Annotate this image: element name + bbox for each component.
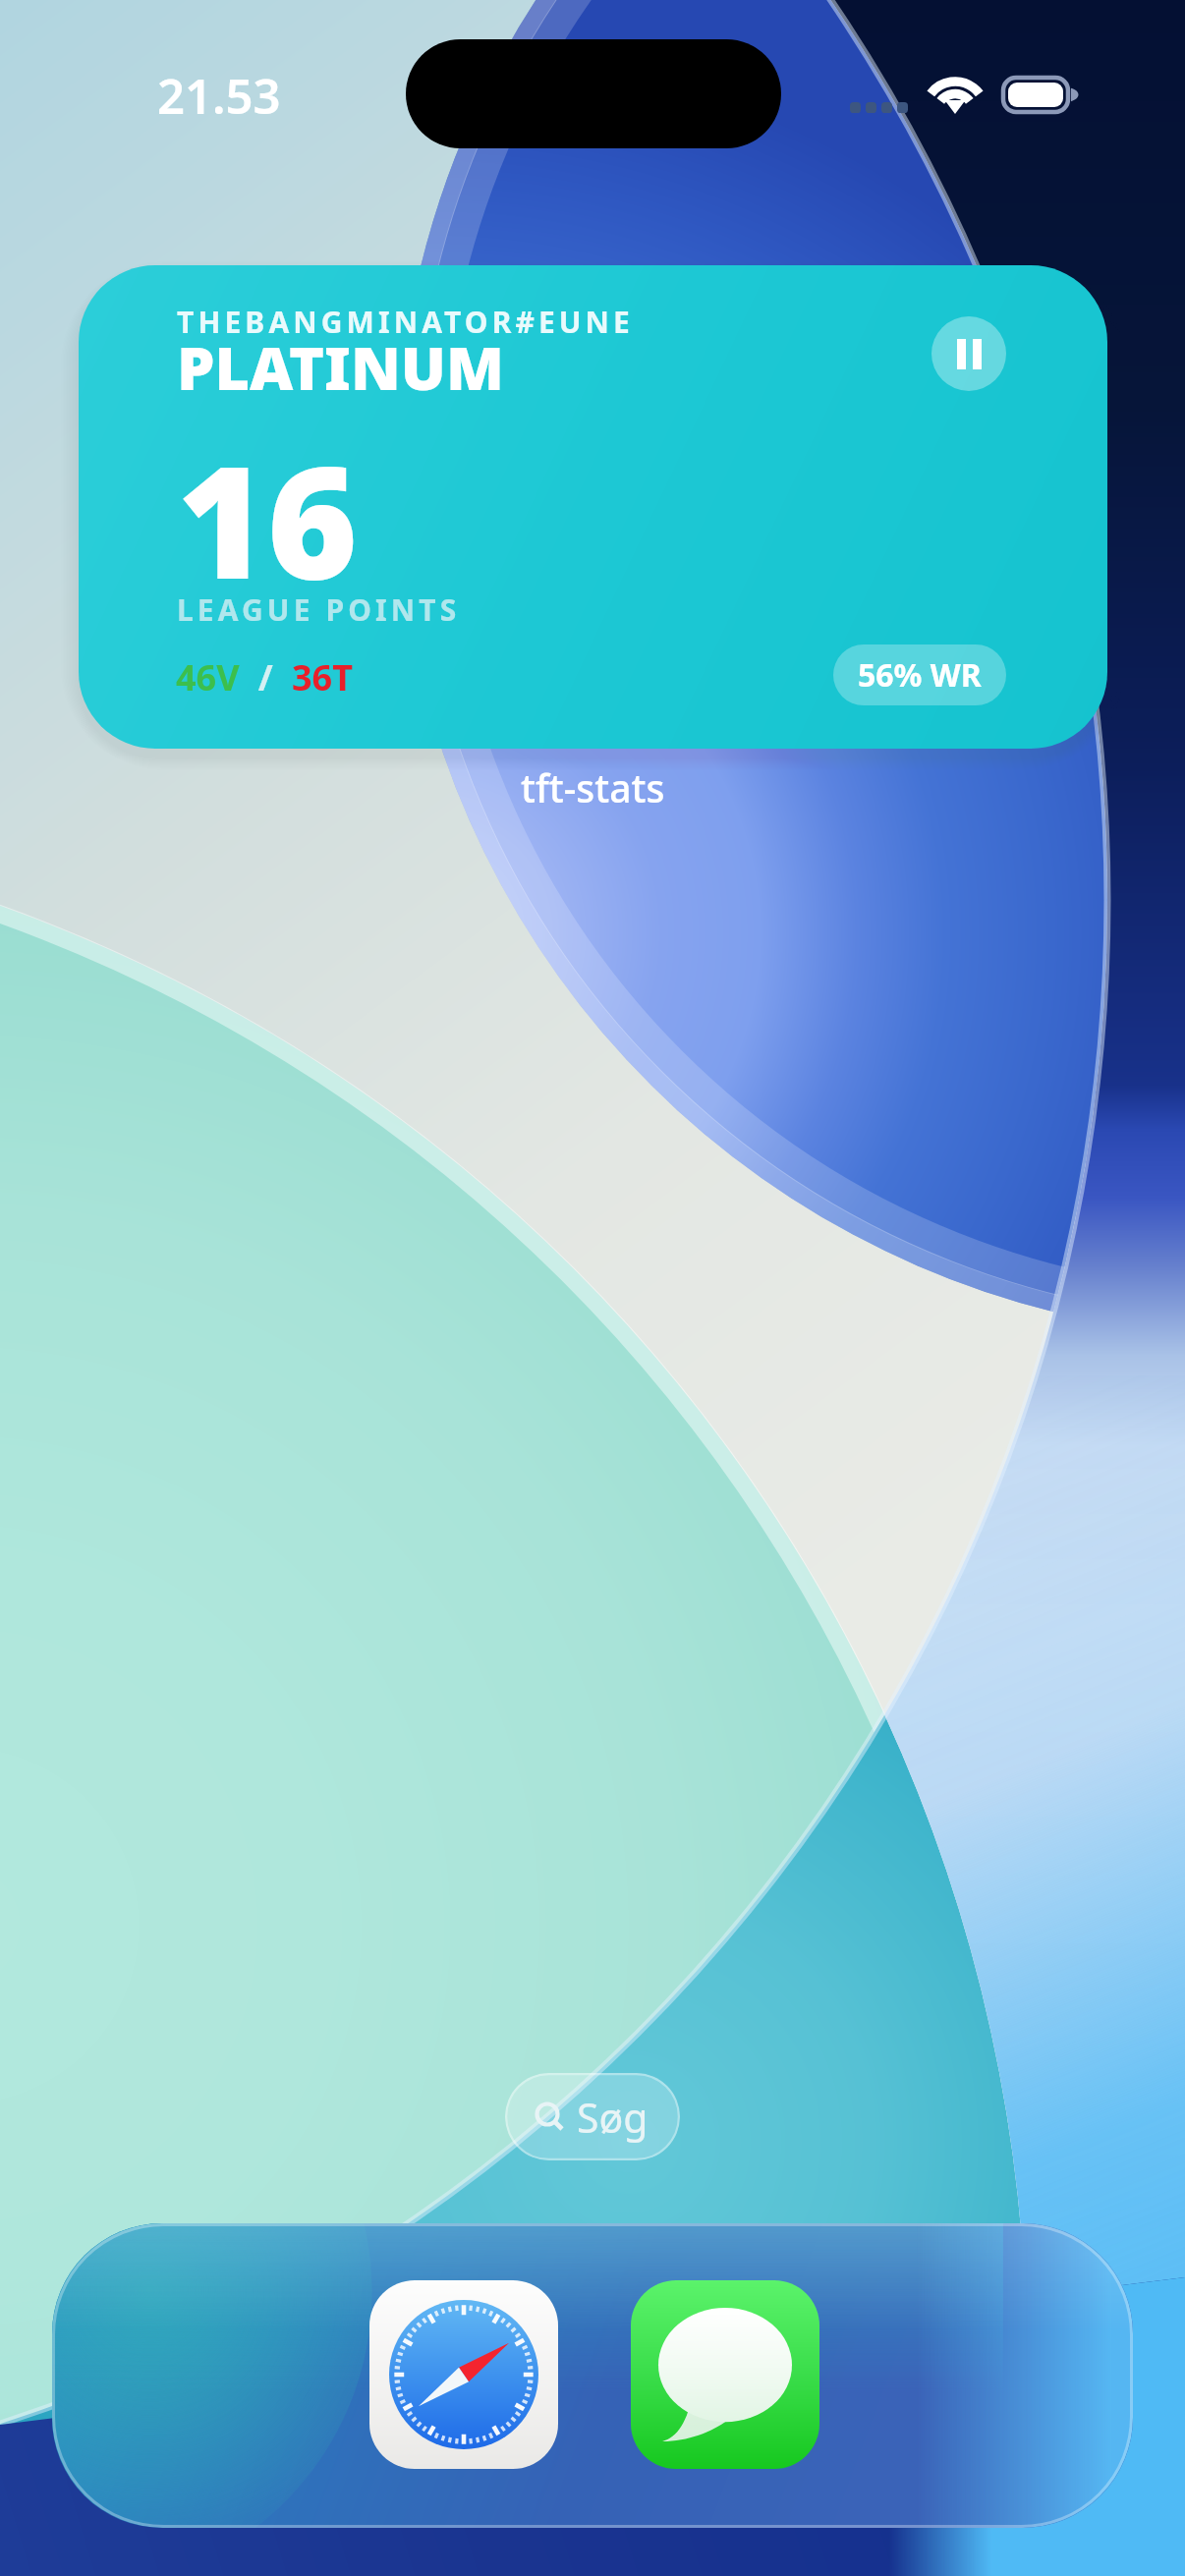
staticText: PLATINUM [177,326,504,408]
staticText: 36T [292,653,353,701]
staticText: THEBANGMINATOR#EUNE [177,302,634,342]
staticText: LEAGUE POINTS [177,589,461,630]
button[interactable]: Messages [631,2280,819,2469]
button[interactable]: Safari [369,2280,558,2469]
staticText: 21.53 [157,63,281,129]
staticText: 16 [177,414,359,624]
staticText: / [240,653,292,701]
staticText: Søg [577,2090,649,2145]
staticText: 46V [176,653,240,701]
button[interactable]: Søg [505,2073,680,2160]
staticText: tft-stats [521,761,665,813]
staticText: 56% WR [858,653,982,697]
button[interactable]: THEBANGMINATOR#EUNE [79,265,1107,749]
button[interactable]: Pause [931,316,1006,391]
button[interactable]: 56% WR [833,644,1006,705]
